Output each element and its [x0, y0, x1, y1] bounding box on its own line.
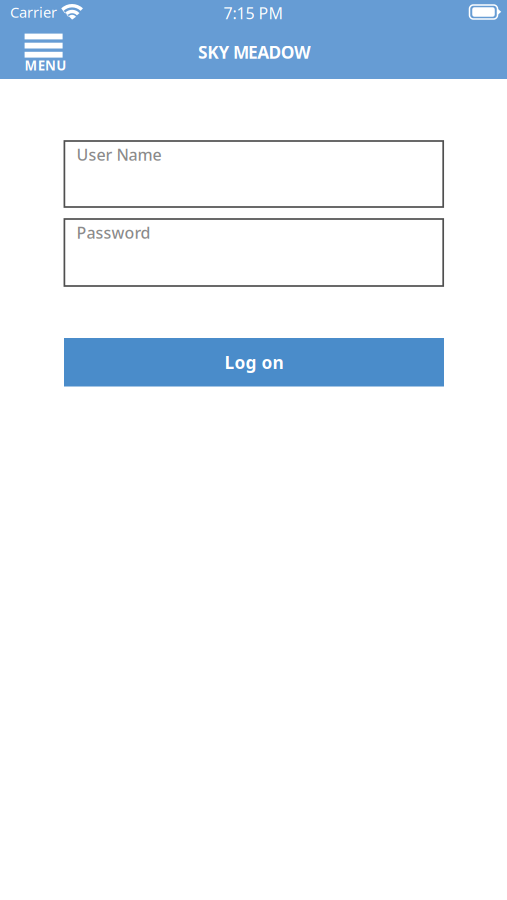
staticText: Log on [224, 351, 283, 374]
button[interactable]: Menu [25, 34, 63, 70]
staticText: User Name [76, 144, 161, 165]
staticText: 7:15 PM [223, 2, 283, 24]
staticText: Carrier [10, 2, 57, 22]
staticText: Password [76, 222, 150, 243]
button[interactable]: Log on [64, 338, 444, 386]
secureTextField[interactable]: Password [76, 222, 260, 243]
textField[interactable]: User Name [76, 144, 260, 165]
staticText: Password [76, 222, 150, 243]
staticText: MENU [25, 56, 66, 74]
staticText: SKY MEADOW [198, 40, 311, 63]
staticText: User Name [76, 144, 161, 165]
